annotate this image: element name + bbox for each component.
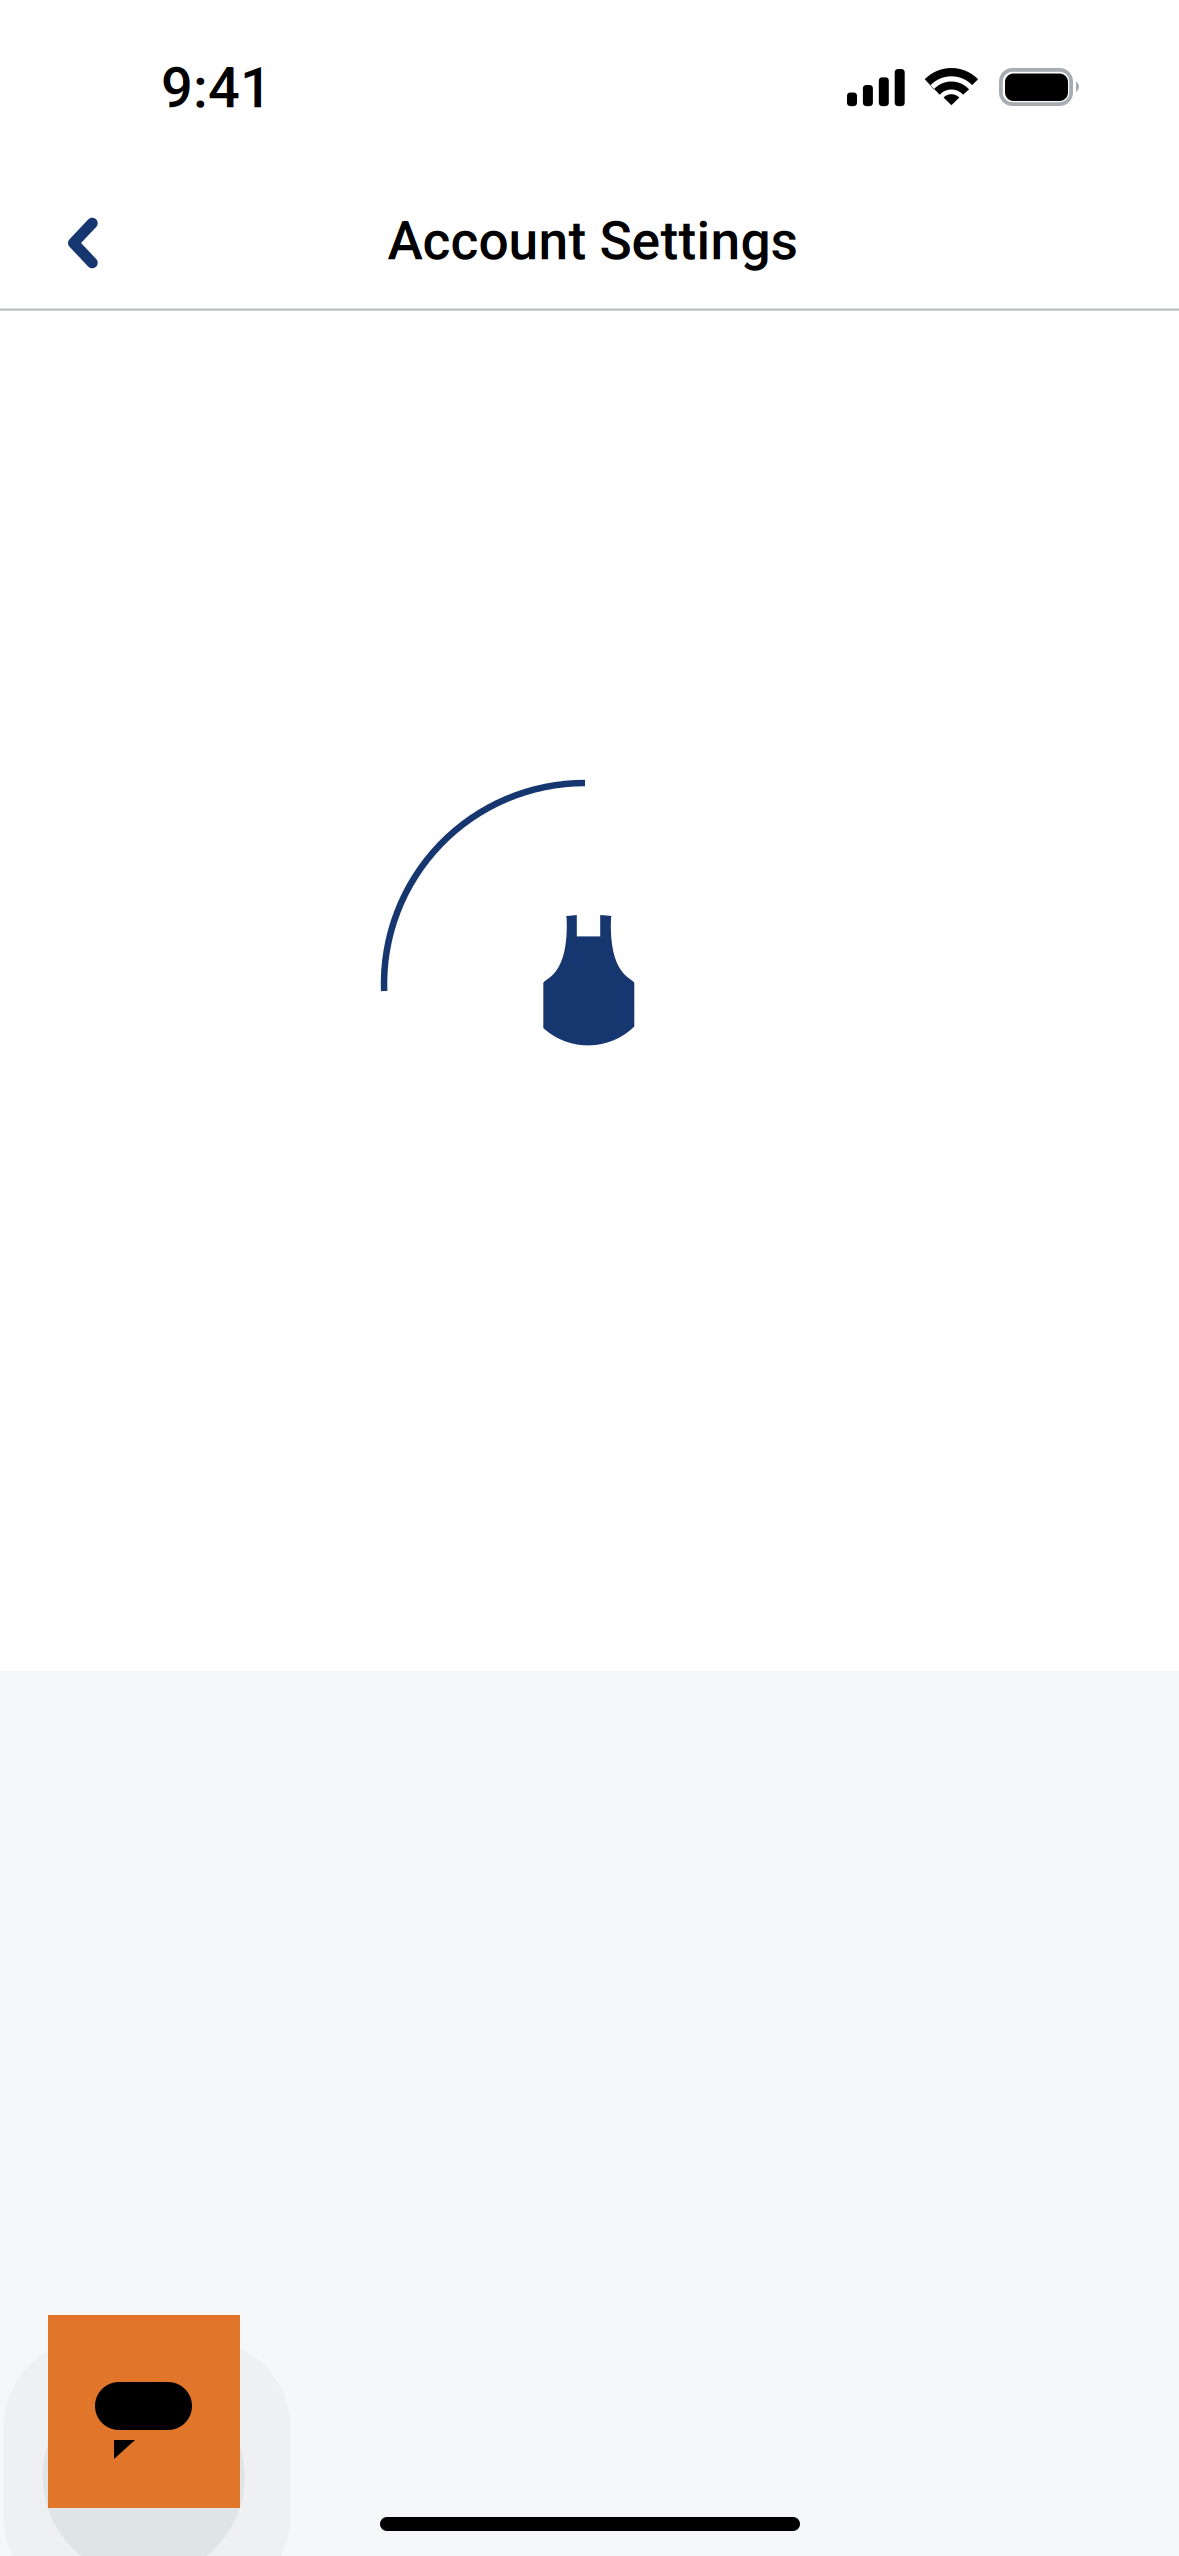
button[interactable]: Back [24, 186, 144, 306]
staticText: 9:41 [161, 55, 272, 121]
staticText: Account Settings [387, 210, 797, 272]
button[interactable]: Open chat [0, 2315, 292, 2556]
